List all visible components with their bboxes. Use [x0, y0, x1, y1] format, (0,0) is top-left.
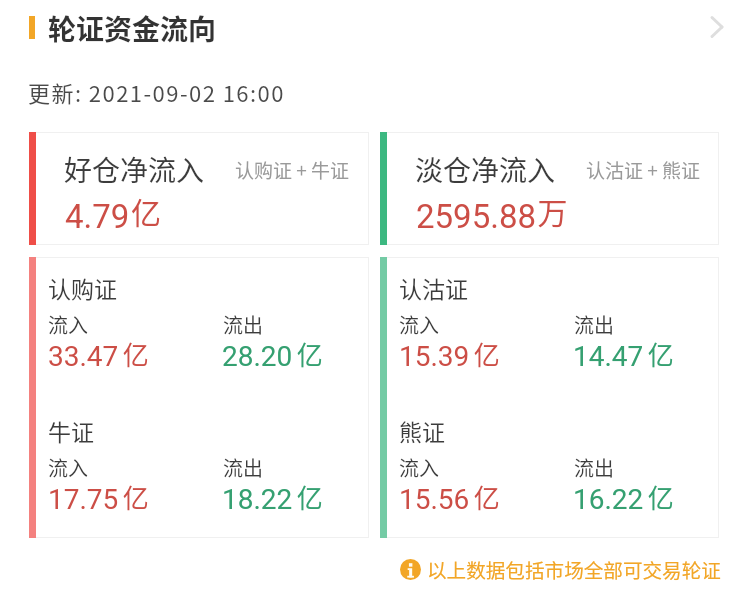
button[interactable]: 认沽证 — [380, 257, 719, 538]
button[interactable]: 轮证资金流向 — [0, 0, 750, 60]
staticText: 16.22 亿 — [573, 478, 674, 516]
staticText: 轮证资金流向 — [48, 8, 217, 49]
staticText: 流出 — [574, 310, 614, 339]
staticText: 以上数据包括市场全部可交易轮证 — [427, 555, 721, 583]
staticText: 33.47 亿 — [48, 335, 149, 373]
staticText: 流入 — [399, 453, 439, 482]
staticText: 牛证 — [48, 414, 94, 447]
staticText: 流出 — [223, 310, 263, 339]
staticText: 17.75 亿 — [48, 478, 149, 516]
staticText: 认购证 + 牛证 — [235, 156, 350, 184]
staticText: 流入 — [48, 310, 88, 339]
staticText: 流出 — [574, 453, 614, 482]
other: Info — [400, 559, 421, 580]
button[interactable]: 认购证 — [29, 257, 369, 538]
staticText: 好仓净流入 — [64, 149, 205, 190]
staticText: 熊证 — [399, 414, 445, 447]
button[interactable]: 淡仓净流入 — [380, 132, 719, 245]
staticText: 15.39 亿 — [399, 335, 500, 373]
staticText: 流出 — [223, 453, 263, 482]
staticText: 流入 — [48, 453, 88, 482]
staticText: 4.79 亿 — [65, 189, 161, 236]
staticText: 流入 — [399, 310, 439, 339]
staticText: 更新: 2021-09-02 16:00 — [28, 76, 285, 108]
staticText: 认购证 — [48, 271, 117, 304]
staticText: 18.22 亿 — [222, 478, 323, 516]
staticText: 认沽证 — [399, 271, 468, 304]
button[interactable]: 好仓净流入 — [29, 132, 369, 245]
staticText: 认沽证 + 熊证 — [586, 156, 701, 184]
staticText: 淡仓净流入 — [415, 149, 556, 190]
staticText: 14.47 亿 — [573, 335, 674, 373]
staticText: 15.56 亿 — [399, 478, 500, 516]
staticText: 2595.88 万 — [416, 189, 568, 236]
button[interactable]: Info — [400, 555, 721, 583]
staticText: 28.20 亿 — [222, 335, 323, 373]
button[interactable]: More — [697, 7, 737, 47]
